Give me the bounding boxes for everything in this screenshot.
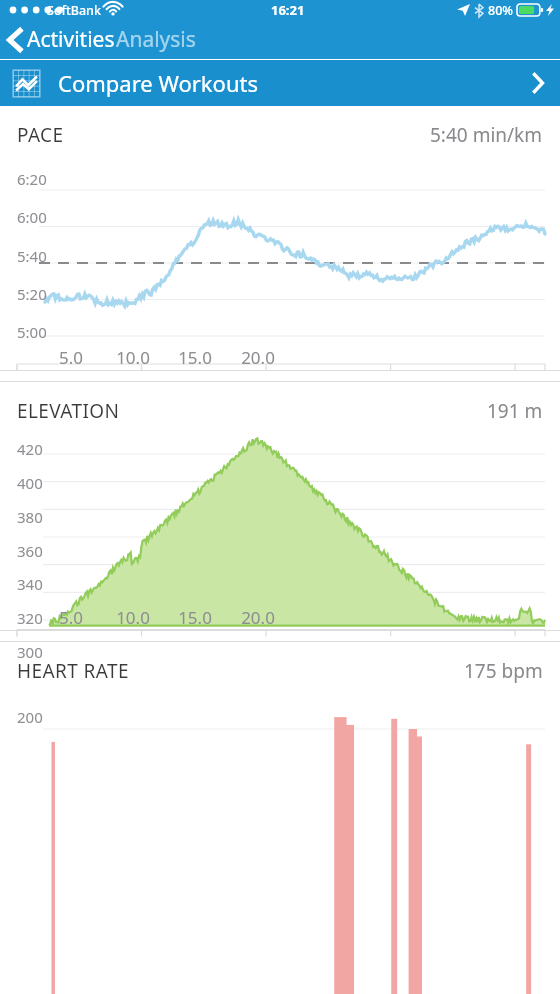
staticText: 20.0 bbox=[236, 606, 280, 629]
staticText: 400 bbox=[17, 473, 43, 493]
staticText: 5:00 bbox=[17, 322, 47, 342]
staticText: 15.0 bbox=[173, 606, 217, 629]
other: Open compare workouts bbox=[533, 73, 544, 93]
staticText: 10.0 bbox=[111, 606, 155, 629]
staticText: 5:20 bbox=[17, 284, 47, 304]
staticText: ELEVATION bbox=[17, 398, 120, 424]
staticText: 360 bbox=[17, 541, 43, 561]
staticText: PACE bbox=[17, 122, 64, 148]
staticText: Analysis bbox=[116, 25, 196, 54]
staticText: 20.0 bbox=[236, 346, 280, 369]
staticText: 420 bbox=[17, 439, 43, 459]
button[interactable]: Activities bbox=[0, 21, 123, 58]
staticText: 10.0 bbox=[111, 346, 155, 369]
staticText: 16:21 bbox=[271, 1, 305, 19]
staticText: Activities bbox=[27, 25, 115, 54]
staticText: 300 bbox=[17, 642, 43, 662]
staticText: SoftBank bbox=[47, 2, 101, 19]
staticText: 5.0 bbox=[49, 606, 93, 629]
staticText: 6:00 bbox=[17, 207, 47, 227]
staticText: 320 bbox=[17, 608, 43, 628]
staticText: 80% bbox=[488, 2, 513, 19]
button[interactable]: Compare Workouts bbox=[0, 60, 560, 106]
staticText: 200 bbox=[17, 707, 43, 727]
staticText: Compare Workouts bbox=[58, 68, 258, 98]
staticText: 6:20 bbox=[17, 169, 47, 189]
staticText: HEART RATE bbox=[17, 658, 129, 684]
staticText: 5:40 min/km bbox=[430, 122, 543, 148]
staticText: 5.0 bbox=[49, 346, 93, 369]
staticText: 191 m bbox=[487, 398, 543, 424]
staticText: 175 bpm bbox=[464, 658, 543, 684]
staticText: 380 bbox=[17, 507, 43, 527]
staticText: 15.0 bbox=[173, 346, 217, 369]
staticText: 5:40 bbox=[17, 246, 47, 266]
staticText: 340 bbox=[17, 574, 43, 594]
